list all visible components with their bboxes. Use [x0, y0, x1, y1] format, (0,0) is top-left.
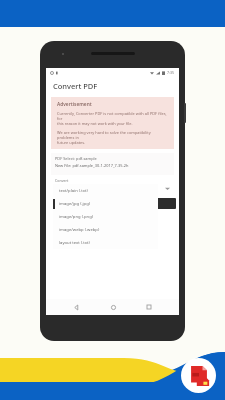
staticText: this reason it may not work with your fi…	[57, 121, 133, 126]
button[interactable]: Home	[106, 300, 120, 314]
button[interactable]: PDF Select: pdf-sample	[51, 153, 174, 175]
button[interactable]: Back	[69, 300, 83, 314]
button[interactable]: Recent apps	[142, 300, 156, 314]
button[interactable]: text/plain (.txt)	[53, 184, 158, 197]
button[interactable]: Advertisement	[51, 97, 174, 149]
staticText: image/webp (.webp)	[59, 227, 100, 233]
staticText: Convert PDF	[53, 81, 98, 91]
staticText: image/png (.png)	[59, 214, 94, 220]
staticText: Advertisement	[57, 101, 92, 108]
staticText: New File: pdf-sample_30-1-2017_7-35-2h	[55, 163, 129, 168]
staticText: layout text (.txt)	[59, 240, 90, 246]
button[interactable]: image/png (.png)	[53, 210, 158, 223]
button[interactable]: PDF app icon	[181, 358, 216, 393]
button[interactable]: image/webp (.webp)	[53, 223, 158, 236]
staticText: future updates.	[57, 140, 86, 145]
staticText: text/plain (.txt)	[59, 188, 88, 194]
staticText: Convert	[55, 178, 69, 183]
button[interactable]: layout text (.txt)	[53, 236, 158, 249]
staticText: PDF Select: pdf-sample	[55, 156, 97, 161]
staticText: 7:35	[167, 70, 175, 75]
staticText: image/jpg (.jpg)	[59, 201, 91, 207]
button[interactable]	[150, 198, 176, 209]
staticText: Currently, Converter PDF is not compatib…	[57, 111, 168, 121]
staticText: We are working very hard to solve the co…	[57, 130, 168, 140]
button[interactable]: image/jpg (.jpg)	[53, 197, 158, 210]
